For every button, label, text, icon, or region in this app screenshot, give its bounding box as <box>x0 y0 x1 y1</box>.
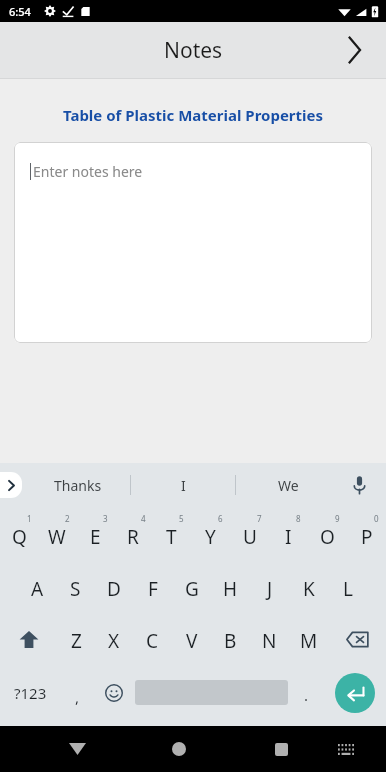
staticText: N <box>262 628 277 654</box>
staticText: L <box>343 576 353 602</box>
button[interactable]: I <box>269 509 308 561</box>
button[interactable]: Voice input <box>342 468 376 502</box>
button[interactable]: G <box>172 561 211 613</box>
button[interactable]: M <box>289 613 328 665</box>
staticText: Q <box>12 524 27 550</box>
button[interactable]: ?123 <box>0 665 61 720</box>
button[interactable]: H <box>211 561 250 613</box>
staticText: U <box>243 524 257 550</box>
button[interactable]: F <box>133 561 172 613</box>
staticText: S <box>70 576 81 602</box>
button[interactable]: V <box>172 613 211 665</box>
button[interactable]: . <box>290 665 323 720</box>
button[interactable]: O <box>308 509 347 561</box>
button[interactable]: K <box>289 561 328 613</box>
staticText: Thanks <box>54 476 102 495</box>
button[interactable]: Emoji <box>94 665 133 720</box>
button[interactable]: Shift <box>0 613 57 665</box>
staticText: ?123 <box>14 683 47 703</box>
staticText: Z <box>71 628 82 654</box>
staticText: V <box>186 628 198 654</box>
staticText: M <box>300 628 318 654</box>
button[interactable]: Y <box>191 509 230 561</box>
staticText: G <box>185 576 199 602</box>
button[interactable]: Back <box>46 726 108 772</box>
button[interactable]: Expand toolbar <box>0 472 22 498</box>
button[interactable]: S <box>56 561 94 613</box>
button[interactable]: J <box>250 561 289 613</box>
staticText: R <box>127 524 139 550</box>
button[interactable]: E <box>76 509 114 561</box>
button[interactable]: Table of Plastic Material Properties <box>0 105 386 125</box>
staticText: D <box>107 576 121 602</box>
staticText: J <box>267 576 273 602</box>
staticText: 9 <box>335 513 340 524</box>
button[interactable]: R <box>114 509 152 561</box>
staticText: A <box>31 576 44 602</box>
button[interactable]: Q <box>0 509 38 561</box>
button[interactable]: D <box>94 561 133 613</box>
staticText: 1 <box>27 513 32 524</box>
staticText: We <box>278 476 299 495</box>
button[interactable]: B <box>211 613 250 665</box>
staticText: 6:54 <box>9 4 31 19</box>
button[interactable]: Backspace <box>328 613 386 665</box>
staticText: Notes <box>164 36 223 65</box>
button[interactable]: Thanks <box>26 463 130 507</box>
staticText: Y <box>205 524 216 550</box>
staticText: B <box>224 628 237 654</box>
button[interactable]: Space <box>133 665 290 720</box>
staticText: K <box>303 576 315 602</box>
button[interactable]: W <box>38 509 76 561</box>
staticText: T <box>166 524 177 550</box>
button[interactable]: Enter <box>323 665 386 720</box>
staticText: W <box>48 524 66 550</box>
staticText: I <box>181 476 186 495</box>
button[interactable]: X <box>95 613 133 665</box>
staticText: , <box>75 687 80 707</box>
button[interactable]: Home <box>148 726 210 772</box>
button[interactable]: Next <box>332 28 376 72</box>
button[interactable]: U <box>230 509 269 561</box>
staticText: E <box>90 524 101 550</box>
staticText: P <box>361 524 373 550</box>
button[interactable]: A <box>18 561 56 613</box>
button[interactable]: P <box>347 509 386 561</box>
button[interactable]: , <box>61 665 94 720</box>
staticText: . <box>304 685 309 705</box>
staticText: 8 <box>296 513 301 524</box>
staticText: 4 <box>141 513 146 524</box>
staticText: 6 <box>218 513 223 524</box>
button[interactable]: L <box>328 561 367 613</box>
staticText: H <box>223 576 238 602</box>
button[interactable]: T <box>152 509 191 561</box>
staticText: F <box>148 576 158 602</box>
staticText: X <box>108 628 120 654</box>
staticText: C <box>146 628 159 654</box>
staticText: 0 <box>374 513 379 524</box>
staticText: Enter notes here <box>33 162 143 181</box>
staticText: I <box>285 524 292 550</box>
staticText: O <box>320 524 335 550</box>
button[interactable]: Enter notes here <box>14 142 372 343</box>
button[interactable]: Recents <box>250 726 312 772</box>
button[interactable]: I <box>131 463 235 507</box>
staticText: 3 <box>103 513 108 524</box>
button[interactable]: Z <box>57 613 95 665</box>
staticText: 2 <box>65 513 70 524</box>
staticText: 7 <box>257 513 262 524</box>
button[interactable]: Switch keyboard <box>319 726 373 772</box>
button[interactable]: N <box>250 613 289 665</box>
button[interactable]: C <box>133 613 172 665</box>
button[interactable]: We <box>236 463 340 507</box>
staticText: 5 <box>179 513 184 524</box>
